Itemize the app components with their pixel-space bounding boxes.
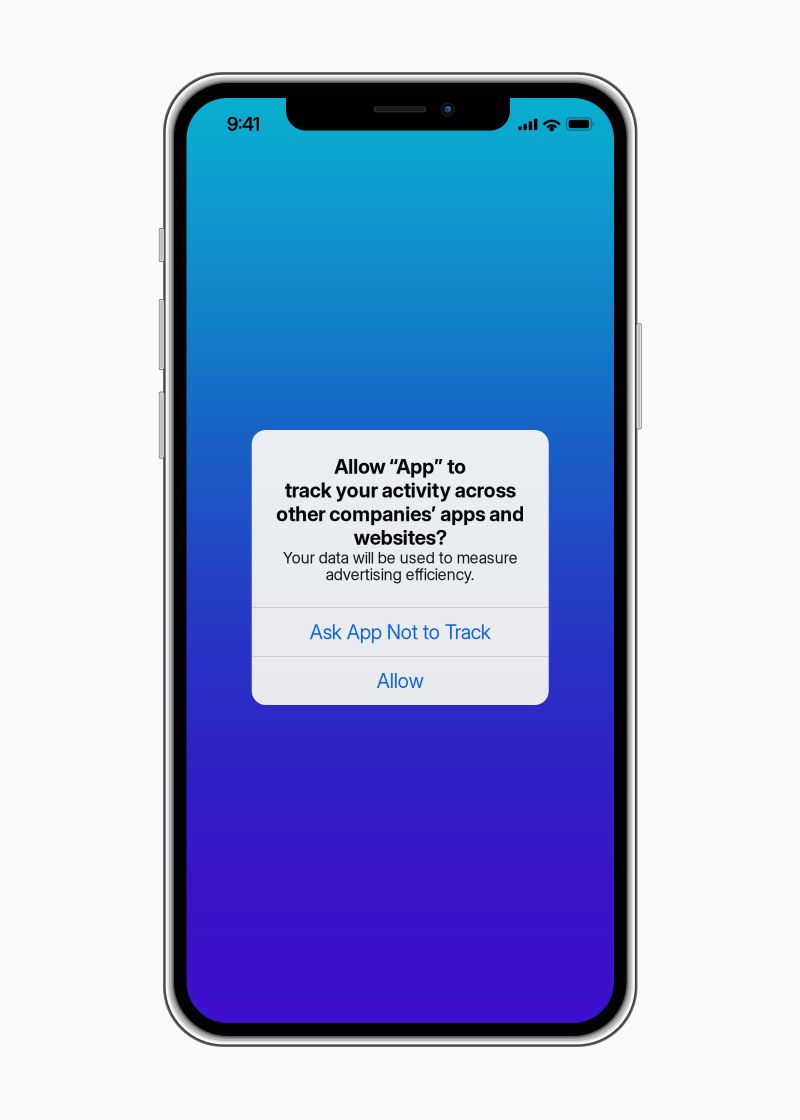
button[interactable]: Allow <box>252 657 549 705</box>
staticText: Allow <box>377 669 424 693</box>
button[interactable]: Ask App Not to Track <box>252 608 549 656</box>
staticText: websites? <box>354 525 447 550</box>
staticText: Allow “App” to <box>334 454 466 479</box>
staticText: other companies’ apps and <box>276 502 524 526</box>
staticText: track your activity across <box>285 478 516 502</box>
staticText: 9:41 <box>227 113 260 135</box>
staticText: Ask App Not to Track <box>310 620 491 644</box>
staticText: Your data will be used to measure <box>283 548 518 567</box>
staticText: advertising efficiency. <box>326 565 475 584</box>
